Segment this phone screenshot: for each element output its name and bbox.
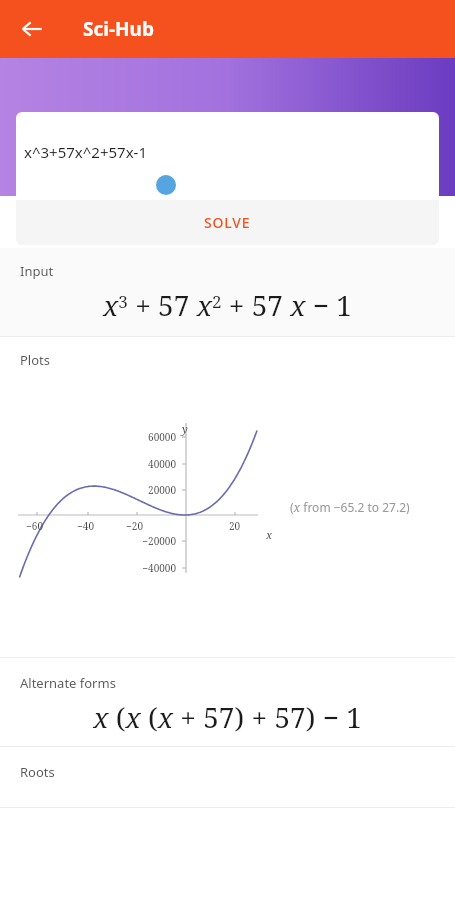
staticText: Alternate forms bbox=[20, 674, 116, 692]
staticText: x (x (x + 57) + 57) − 1 bbox=[0, 698, 455, 736]
staticText: (x from −65.2 to 27.2) bbox=[290, 499, 410, 515]
staticText: x bbox=[266, 527, 273, 542]
staticText: 60000 bbox=[28, 430, 176, 444]
staticText: −40000 bbox=[28, 561, 176, 575]
button[interactable]: Back bbox=[12, 9, 52, 49]
staticText: −60 bbox=[26, 519, 43, 533]
button[interactable]: SOLVE bbox=[16, 200, 439, 245]
staticText: x^3+57x^2+57x-1 bbox=[24, 142, 148, 162]
staticText: −20000 bbox=[28, 534, 176, 548]
staticText: Sci-Hub bbox=[83, 16, 154, 42]
staticText: SOLVE bbox=[204, 213, 251, 232]
staticText: −20 bbox=[126, 519, 143, 533]
staticText: Roots bbox=[20, 763, 55, 781]
button[interactable]: x^3+57x^2+57x-1 bbox=[16, 112, 439, 200]
staticText: 20 bbox=[229, 519, 241, 533]
staticText: −40 bbox=[77, 519, 94, 533]
staticText: x3 + 57 x2 + 57 x − 1 bbox=[0, 286, 455, 324]
staticText: 40000 bbox=[28, 457, 176, 471]
staticText: Plots bbox=[20, 351, 51, 369]
staticText: y bbox=[182, 421, 188, 436]
staticText: 20000 bbox=[28, 483, 176, 497]
staticText: Input bbox=[20, 262, 54, 280]
